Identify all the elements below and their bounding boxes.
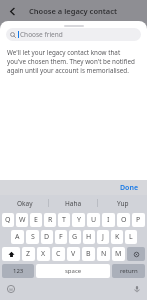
staticText: Yup bbox=[117, 199, 129, 208]
staticText: K bbox=[115, 232, 120, 242]
button[interactable]: V bbox=[67, 247, 80, 261]
staticText: X bbox=[41, 249, 46, 259]
button[interactable]: M bbox=[112, 247, 125, 261]
staticText: F bbox=[59, 232, 63, 242]
button[interactable]: R bbox=[44, 213, 56, 227]
button[interactable]: O bbox=[117, 213, 130, 227]
staticText: return bbox=[120, 267, 138, 275]
button[interactable]: Yup bbox=[98, 195, 147, 211]
button[interactable]: S bbox=[26, 230, 39, 244]
staticText: E bbox=[34, 215, 38, 225]
button[interactable]: T bbox=[58, 213, 70, 227]
button[interactable]: E bbox=[30, 213, 42, 227]
button[interactable]: X bbox=[37, 247, 50, 261]
button[interactable]: return bbox=[112, 264, 145, 278]
staticText: P bbox=[136, 215, 141, 225]
button[interactable]: D bbox=[41, 230, 53, 244]
button[interactable]: Back bbox=[4, 3, 20, 19]
staticText: We'll let your legacy contact know that … bbox=[7, 48, 140, 75]
staticText: Y bbox=[77, 215, 81, 225]
button[interactable]: Choose friend bbox=[6, 28, 141, 41]
staticText: H bbox=[86, 232, 92, 242]
staticText: O bbox=[121, 215, 127, 225]
button[interactable]: W bbox=[16, 213, 28, 227]
staticText: Z bbox=[26, 249, 31, 259]
button[interactable]: J bbox=[97, 230, 109, 244]
staticText: R bbox=[48, 215, 53, 225]
staticText: A bbox=[15, 232, 20, 242]
staticText: T bbox=[62, 215, 66, 225]
staticText: U bbox=[91, 215, 97, 225]
button[interactable]: Shift bbox=[2, 247, 20, 261]
staticText: Okay bbox=[17, 199, 33, 208]
staticText: D bbox=[44, 232, 50, 242]
button[interactable]: Okay bbox=[0, 195, 49, 211]
button[interactable]: Emoji bbox=[4, 282, 17, 295]
button[interactable]: L bbox=[125, 230, 137, 244]
button[interactable]: Z bbox=[22, 247, 35, 261]
button[interactable]: F bbox=[55, 230, 67, 244]
button[interactable]: 123 bbox=[2, 264, 34, 278]
staticText: space bbox=[65, 267, 82, 275]
button[interactable]: I bbox=[102, 213, 115, 227]
button[interactable]: Y bbox=[72, 213, 85, 227]
staticText: Choose a legacy contact bbox=[29, 6, 118, 16]
button[interactable]: Haha bbox=[49, 195, 98, 211]
button[interactable]: U bbox=[87, 213, 100, 227]
button[interactable]: H bbox=[83, 230, 95, 244]
staticText: N bbox=[101, 249, 107, 259]
staticText: Haha bbox=[65, 199, 82, 208]
button[interactable]: K bbox=[111, 230, 123, 244]
staticText: Done bbox=[120, 183, 139, 193]
staticText: B bbox=[86, 249, 91, 259]
staticText: 123 bbox=[13, 267, 24, 275]
staticText: W bbox=[19, 215, 26, 225]
staticText: M bbox=[115, 249, 122, 259]
button[interactable]: Backspace bbox=[127, 247, 145, 261]
button[interactable]: Done bbox=[117, 182, 142, 194]
button[interactable]: A bbox=[11, 230, 24, 244]
staticText: G bbox=[72, 232, 78, 242]
staticText: S bbox=[31, 232, 35, 242]
button[interactable]: Dictate bbox=[130, 282, 143, 295]
button[interactable]: G bbox=[69, 230, 81, 244]
staticText: Choose friend bbox=[20, 30, 63, 39]
staticText: C bbox=[56, 249, 61, 259]
staticText: L bbox=[129, 232, 133, 242]
button[interactable]: Q bbox=[2, 213, 14, 227]
staticText: Q bbox=[5, 215, 11, 225]
button[interactable]: B bbox=[82, 247, 95, 261]
button[interactable]: P bbox=[132, 213, 145, 227]
staticText: I bbox=[107, 215, 110, 225]
staticText: V bbox=[71, 249, 76, 259]
button[interactable]: space bbox=[36, 264, 110, 278]
button[interactable]: N bbox=[97, 247, 110, 261]
staticText: J bbox=[102, 232, 104, 242]
button[interactable]: C bbox=[52, 247, 65, 261]
